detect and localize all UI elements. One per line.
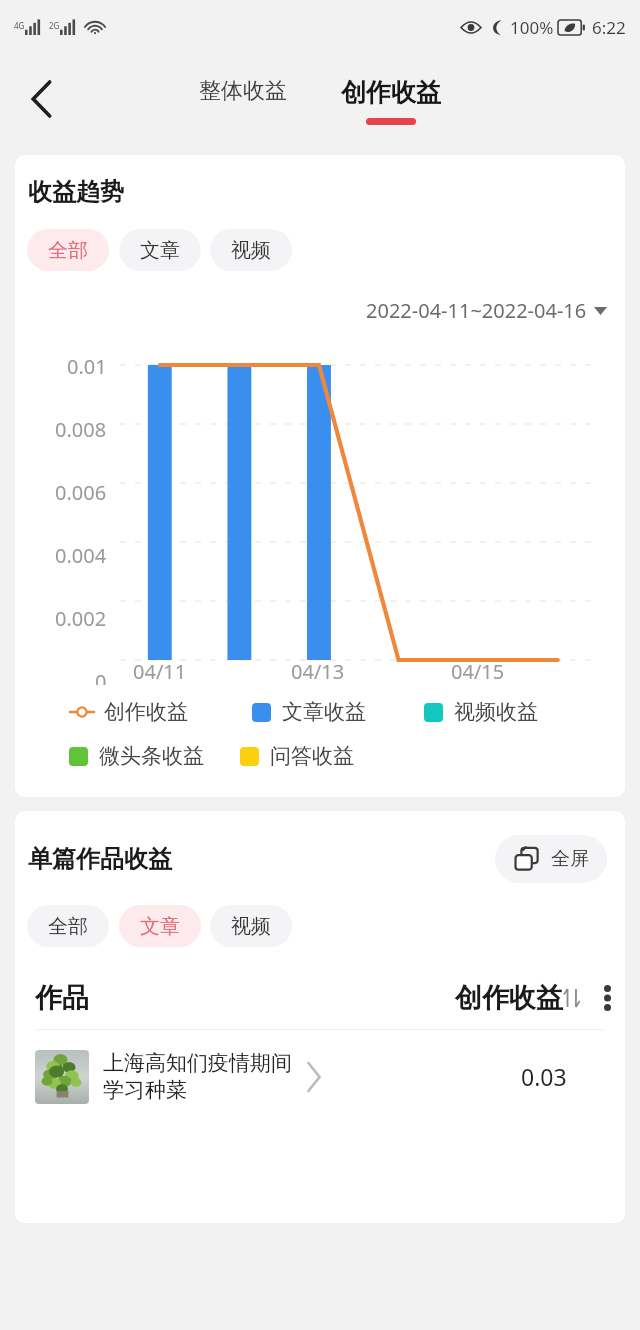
staticText: 0.002 bbox=[55, 605, 107, 632]
button[interactable]: 问答收益 bbox=[240, 743, 354, 769]
staticText: 0.008 bbox=[55, 416, 107, 443]
staticText: 0.01 bbox=[67, 353, 107, 380]
button[interactable]: 创作收益 bbox=[69, 699, 188, 725]
staticText: 100% bbox=[510, 16, 554, 39]
button[interactable]: 全部 bbox=[27, 229, 109, 271]
button[interactable]: 全屏 bbox=[495, 835, 607, 883]
staticText: 整体收益 bbox=[199, 77, 287, 105]
button[interactable]: 上海高知们疫情期间 学习种菜 bbox=[15, 1030, 625, 1123]
button[interactable]: 全部 bbox=[27, 905, 109, 947]
button[interactable]: 2022-04-11~2022-04-16 bbox=[15, 297, 607, 324]
button[interactable]: 整体收益 bbox=[191, 77, 295, 119]
button[interactable]: 视频收益 bbox=[424, 699, 538, 725]
button[interactable]: 视频 bbox=[210, 229, 292, 271]
button[interactable]: 视频 bbox=[210, 905, 292, 947]
staticText: 2G bbox=[49, 20, 60, 31]
button[interactable]: 创作收益 bbox=[333, 77, 449, 125]
staticText: 文章收益 bbox=[282, 699, 366, 725]
staticText: 创作收益 bbox=[455, 981, 563, 1015]
staticText: 视频 bbox=[231, 238, 271, 263]
staticText: 收益趋势 bbox=[28, 177, 124, 207]
staticText: 04/11 bbox=[133, 658, 187, 685]
staticText: 0.004 bbox=[55, 542, 107, 569]
button[interactable]: More bbox=[597, 978, 617, 1018]
staticText: 0.03 bbox=[521, 1061, 567, 1092]
button[interactable]: 文章 bbox=[119, 905, 201, 947]
staticText: 视频收益 bbox=[454, 699, 538, 725]
staticText: 作品 bbox=[35, 981, 89, 1015]
button[interactable]: 文章 bbox=[119, 229, 201, 271]
staticText: 0.006 bbox=[55, 479, 107, 506]
staticText: 全屏 bbox=[551, 847, 589, 871]
staticText: 全部 bbox=[48, 238, 88, 263]
staticText: 文章 bbox=[140, 238, 180, 263]
button[interactable]: 微头条收益 bbox=[69, 743, 204, 769]
staticText: 创作收益 bbox=[341, 77, 441, 108]
staticText: 问答收益 bbox=[270, 743, 354, 769]
staticText: 0 bbox=[95, 668, 107, 685]
staticText: 上海高知们疫情期间 学习种菜 bbox=[103, 1050, 292, 1103]
button[interactable]: 文章收益 bbox=[252, 699, 366, 725]
staticText: 创作收益 bbox=[104, 699, 188, 725]
staticText: 04/13 bbox=[291, 658, 345, 685]
staticText: 文章 bbox=[140, 914, 180, 939]
button[interactable]: Back bbox=[14, 71, 70, 127]
staticText: 视频 bbox=[231, 914, 271, 939]
staticText: 单篇作品收益 bbox=[28, 844, 172, 874]
button[interactable]: 创作收益 bbox=[455, 981, 581, 1015]
staticText: 全部 bbox=[48, 914, 88, 939]
staticText: 6:22 bbox=[592, 16, 626, 39]
staticText: 04/15 bbox=[451, 658, 505, 685]
staticText: 4G bbox=[14, 20, 25, 31]
staticText: 2022-04-11~2022-04-16 bbox=[366, 297, 587, 324]
staticText: 微头条收益 bbox=[99, 743, 204, 769]
